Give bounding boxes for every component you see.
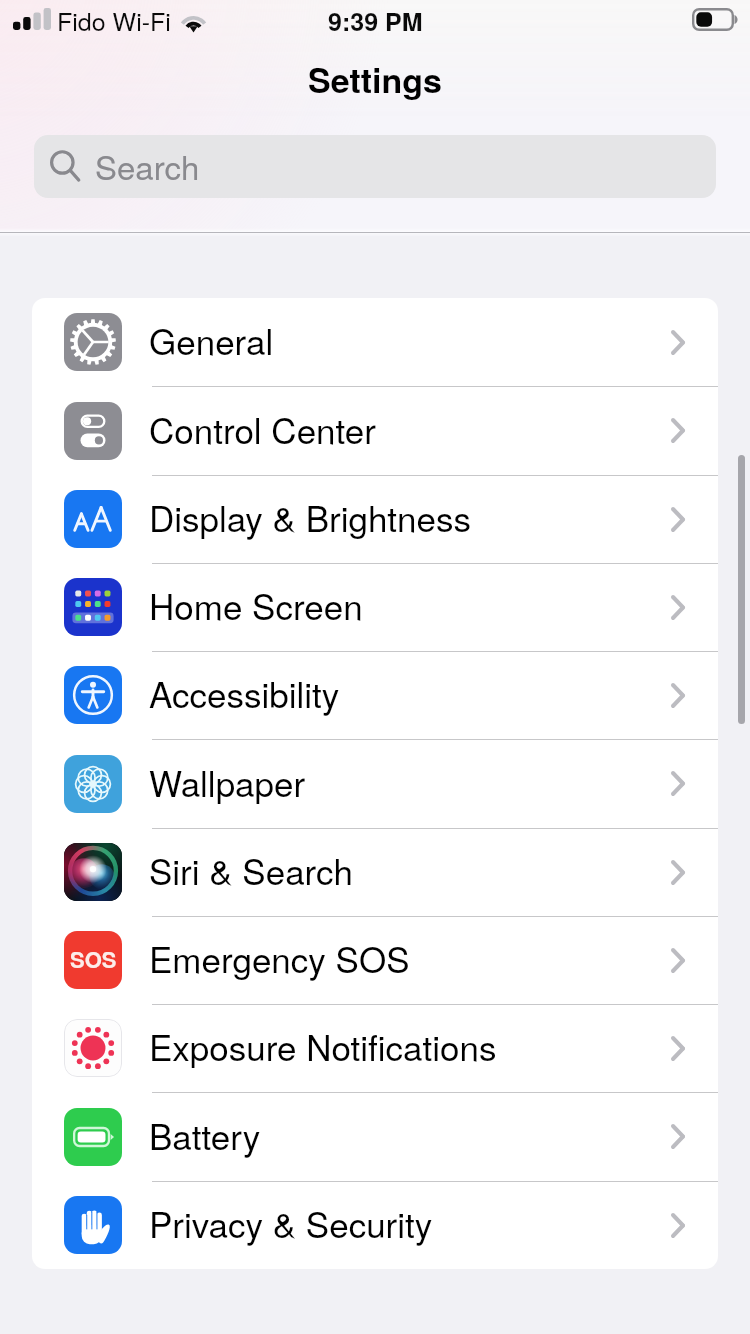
button[interactable]: General: [32, 298, 718, 386]
staticText: Settings: [308, 55, 442, 104]
staticText: Siri & Search: [149, 845, 354, 895]
staticText: Privacy & Security: [149, 1198, 433, 1248]
button[interactable]: Home Screen: [32, 563, 718, 651]
button[interactable]: Battery: [32, 1092, 718, 1181]
staticText: Control Center: [149, 404, 376, 454]
staticText: General: [149, 315, 274, 365]
button[interactable]: Search: [34, 135, 716, 198]
button[interactable]: Control Center: [32, 386, 718, 475]
staticText: SOS: [70, 943, 117, 975]
staticText: Emergency SOS: [149, 933, 410, 983]
button[interactable]: Wallpaper: [32, 739, 718, 828]
staticText: Display & Brightness: [149, 492, 472, 542]
button[interactable]: Siri & Search: [32, 828, 718, 916]
staticText: Fido Wi-Fi: [57, 2, 171, 38]
button[interactable]: Accessibility: [32, 651, 718, 739]
button[interactable]: Exposure Notifications: [32, 1004, 718, 1092]
button[interactable]: SOS: [32, 916, 718, 1004]
button[interactable]: Display & Brightness: [32, 475, 718, 563]
staticText: Accessibility: [149, 668, 340, 718]
staticText: Wallpaper: [149, 757, 306, 807]
staticText: 9:39 PM: [328, 3, 423, 39]
staticText: Battery: [149, 1110, 261, 1160]
staticText: Exposure Notifications: [149, 1021, 497, 1071]
staticText: Search: [95, 142, 200, 189]
button[interactable]: Privacy & Security: [32, 1181, 718, 1269]
staticText: Home Screen: [149, 580, 363, 630]
